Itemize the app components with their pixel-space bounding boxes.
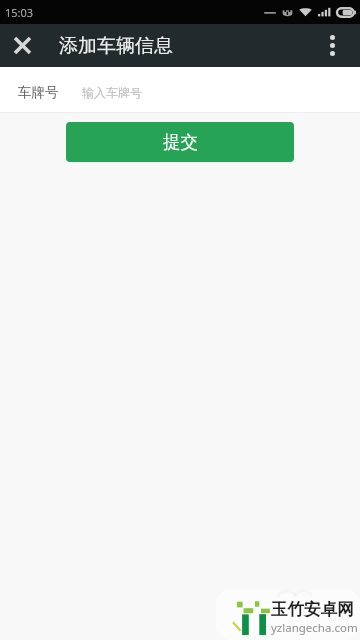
- staticText: 输入车牌号: [82, 85, 142, 100]
- staticText: 车牌号: [18, 84, 59, 101]
- staticText: 15:03: [5, 5, 34, 20]
- button[interactable]: More options: [304, 24, 360, 67]
- staticText: 添加车辆信息: [59, 34, 173, 58]
- button[interactable]: 提交: [66, 122, 294, 162]
- button[interactable]: Close: [0, 24, 44, 67]
- staticText: 提交: [163, 131, 198, 153]
- button[interactable]: 车牌号: [18, 73, 360, 112]
- staticText: 玉竹安卓网: [271, 599, 354, 620]
- staticText: yzlangecha.com: [271, 620, 358, 636]
